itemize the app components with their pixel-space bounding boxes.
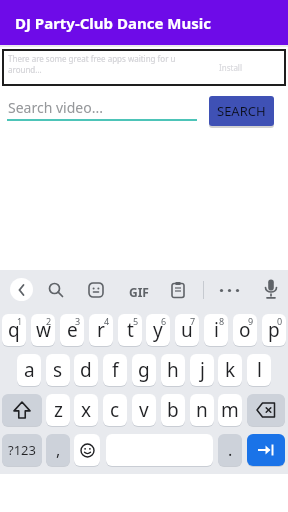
- staticText: 8: [219, 315, 225, 327]
- staticText: f: [112, 357, 119, 383]
- staticText: b: [167, 397, 179, 423]
- button[interactable]: [74, 434, 100, 466]
- staticText: m: [221, 397, 239, 423]
- staticText: x: [81, 397, 92, 423]
- staticText: 3: [75, 315, 81, 327]
- button[interactable]: ,: [46, 434, 70, 466]
- staticText: 2: [46, 315, 52, 327]
- button[interactable]: z: [46, 394, 70, 426]
- button[interactable]: f: [103, 354, 127, 386]
- button[interactable]: x: [74, 394, 98, 426]
- button[interactable]: k: [218, 354, 242, 386]
- staticText: 1: [17, 315, 23, 327]
- button[interactable]: v: [132, 394, 156, 426]
- staticText: a: [24, 357, 35, 383]
- button[interactable]: w: [31, 314, 55, 346]
- staticText: ,: [56, 439, 61, 461]
- staticText: ?123: [8, 441, 36, 459]
- staticText: v: [139, 397, 149, 423]
- button[interactable]: d: [74, 354, 98, 386]
- button[interactable]: [47, 281, 65, 299]
- button[interactable]: SEARCH: [209, 96, 274, 126]
- staticText: l: [257, 357, 262, 383]
- button[interactable]: u: [175, 314, 199, 346]
- staticText: g: [138, 357, 150, 383]
- staticText: There are some great free apps waiting f…: [8, 53, 176, 64]
- staticText: p: [268, 317, 280, 343]
- button[interactable]: s: [46, 354, 70, 386]
- staticText: Install: [219, 62, 242, 73]
- staticText: h: [167, 357, 179, 383]
- staticText: c: [110, 397, 120, 423]
- staticText: t: [127, 317, 134, 343]
- staticText: z: [54, 397, 63, 423]
- staticText: around...: [8, 64, 42, 75]
- button[interactable]: o: [233, 314, 257, 346]
- staticText: s: [53, 357, 63, 383]
- button[interactable]: r: [89, 314, 113, 346]
- button[interactable]: GIF: [127, 283, 151, 301]
- button[interactable]: [247, 434, 285, 466]
- button[interactable]: ?123: [2, 434, 42, 466]
- staticText: r: [97, 317, 105, 343]
- staticText: n: [196, 397, 208, 423]
- staticText: k: [225, 357, 236, 383]
- button[interactable]: p: [262, 314, 286, 346]
- staticText: u: [181, 317, 193, 343]
- staticText: e: [67, 317, 78, 343]
- button[interactable]: q: [2, 314, 26, 346]
- button[interactable]: [10, 278, 33, 301]
- button[interactable]: .: [218, 434, 242, 466]
- button[interactable]: i: [204, 314, 228, 346]
- button[interactable]: g: [132, 354, 156, 386]
- staticText: DJ Party-Club Dance Music: [15, 13, 211, 33]
- button[interactable]: There are some great free apps waiting f…: [4, 51, 284, 84]
- button[interactable]: [247, 394, 285, 426]
- staticText: y: [153, 317, 163, 343]
- button[interactable]: e: [60, 314, 84, 346]
- staticText: GIF: [129, 284, 149, 300]
- button[interactable]: t: [118, 314, 142, 346]
- staticText: 4: [104, 315, 110, 327]
- button[interactable]: c: [103, 394, 127, 426]
- staticText: d: [80, 357, 92, 383]
- button[interactable]: [87, 281, 105, 299]
- button[interactable]: [262, 279, 280, 301]
- staticText: 0: [277, 315, 283, 327]
- staticText: q: [8, 317, 20, 343]
- staticText: .: [228, 439, 233, 461]
- button[interactable]: b: [161, 394, 185, 426]
- staticText: w: [36, 317, 51, 343]
- staticText: Search video...: [8, 98, 103, 117]
- button[interactable]: a: [17, 354, 41, 386]
- staticText: o: [239, 317, 251, 343]
- button[interactable]: [220, 281, 238, 299]
- staticText: 5: [133, 315, 139, 327]
- button[interactable]: [169, 281, 187, 299]
- staticText: 6: [161, 315, 167, 327]
- button[interactable]: Search video...: [4, 92, 200, 124]
- button[interactable]: y: [146, 314, 170, 346]
- button[interactable]: [2, 394, 42, 426]
- button[interactable]: n: [190, 394, 214, 426]
- button[interactable]: l: [247, 354, 271, 386]
- staticText: i: [214, 317, 219, 343]
- staticText: 9: [248, 315, 254, 327]
- staticText: j: [200, 357, 205, 383]
- button[interactable]: m: [218, 394, 242, 426]
- button[interactable]: h: [161, 354, 185, 386]
- staticText: 7: [190, 315, 196, 327]
- button[interactable]: j: [190, 354, 214, 386]
- staticText: SEARCH: [217, 102, 266, 120]
